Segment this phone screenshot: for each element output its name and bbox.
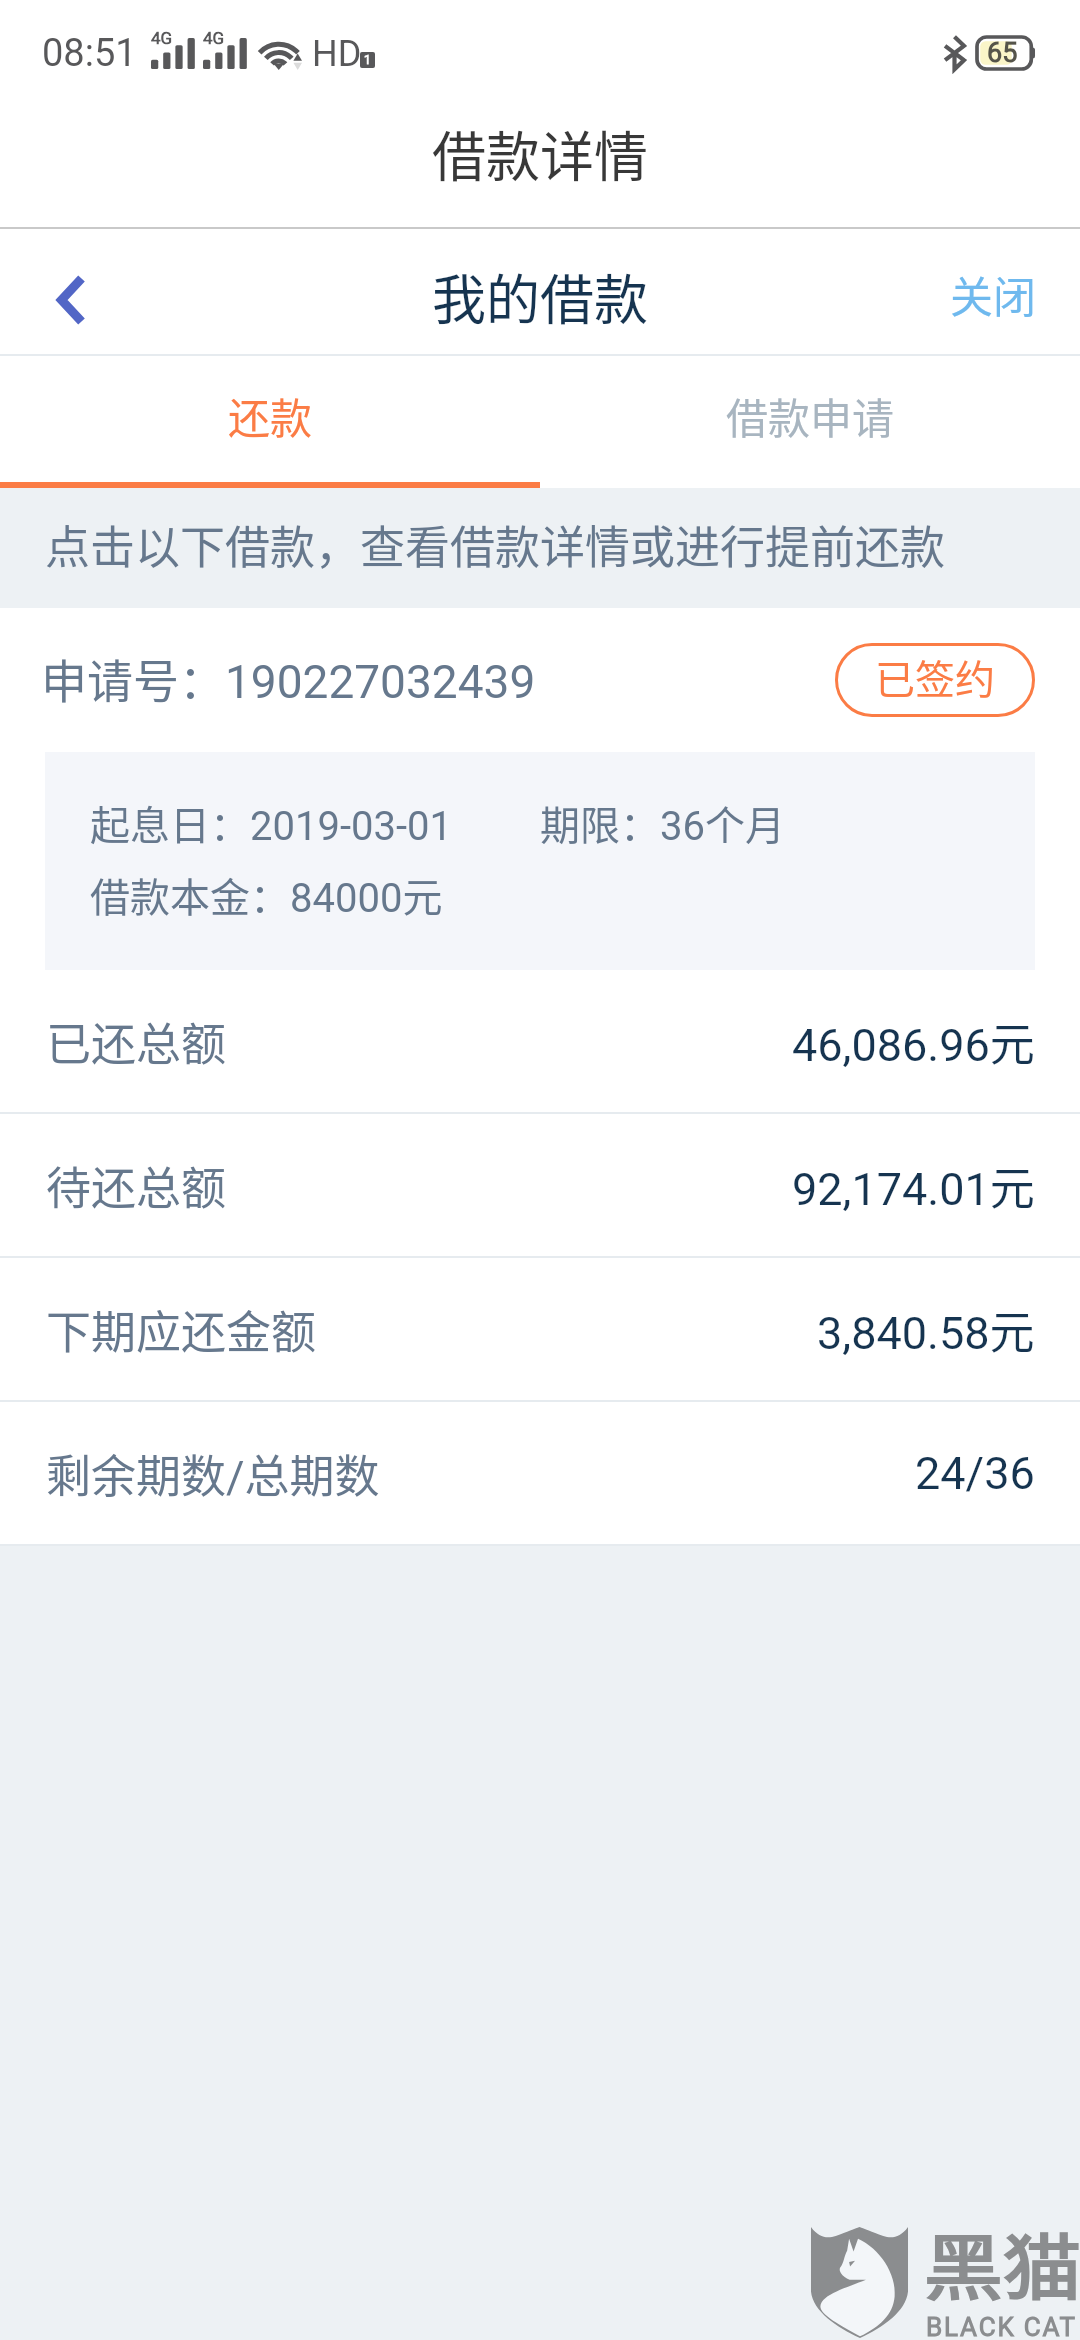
staticText: BLACK CAT — [926, 2312, 1077, 2340]
staticText: 4G — [203, 28, 225, 48]
button[interactable]: 申请号：190227032439 — [0, 608, 1080, 970]
staticText: 借款本金：84000元 — [90, 866, 443, 924]
staticText: 1 — [364, 53, 371, 67]
staticText: 已还总额 — [46, 1009, 227, 1074]
staticText: 起息日：2019-03-01 — [90, 794, 452, 852]
staticText: 待还总额 — [46, 1153, 227, 1218]
staticText: 3,840.58元 — [817, 1297, 1035, 1362]
staticText: 08:51 — [42, 31, 137, 76]
staticText: 期限：36个月 — [540, 794, 785, 852]
button[interactable]: 关闭 — [950, 229, 1036, 356]
button[interactable]: 已还总额 — [0, 970, 1080, 1114]
staticText: 申请号：190227032439 — [41, 645, 536, 712]
staticText: 我的借款 — [432, 257, 648, 335]
staticText: 下期应还金额 — [46, 1297, 317, 1362]
button[interactable]: 剩余期数/总期数 — [0, 1402, 1080, 1546]
button[interactable]: 下期应还金额 — [0, 1258, 1080, 1402]
staticText: 92,174.01元 — [792, 1153, 1035, 1218]
staticText: 24/36 — [915, 1447, 1035, 1500]
staticText: 还款 — [228, 385, 313, 446]
button[interactable]: 还款 — [0, 356, 540, 488]
staticText: 46,086.96元 — [792, 1009, 1035, 1074]
staticText: 借款申请 — [726, 385, 895, 446]
staticText: HD — [312, 33, 362, 75]
button[interactable]: 待还总额 — [0, 1114, 1080, 1258]
staticText: 4G — [151, 28, 173, 48]
staticText: 点击以下借款，查看借款详情或进行提前还款 — [45, 512, 946, 577]
staticText: 65 — [987, 37, 1018, 69]
staticText: 借款详情 — [432, 114, 648, 192]
button[interactable]: 借款申请 — [540, 356, 1080, 488]
staticText: 关闭 — [950, 263, 1036, 325]
staticText: 已签约 — [875, 648, 995, 706]
staticText: 剩余期数/总期数 — [46, 1441, 380, 1506]
staticText: 黑猫 — [924, 2211, 1080, 2314]
button[interactable]: 返回 — [0, 229, 150, 356]
